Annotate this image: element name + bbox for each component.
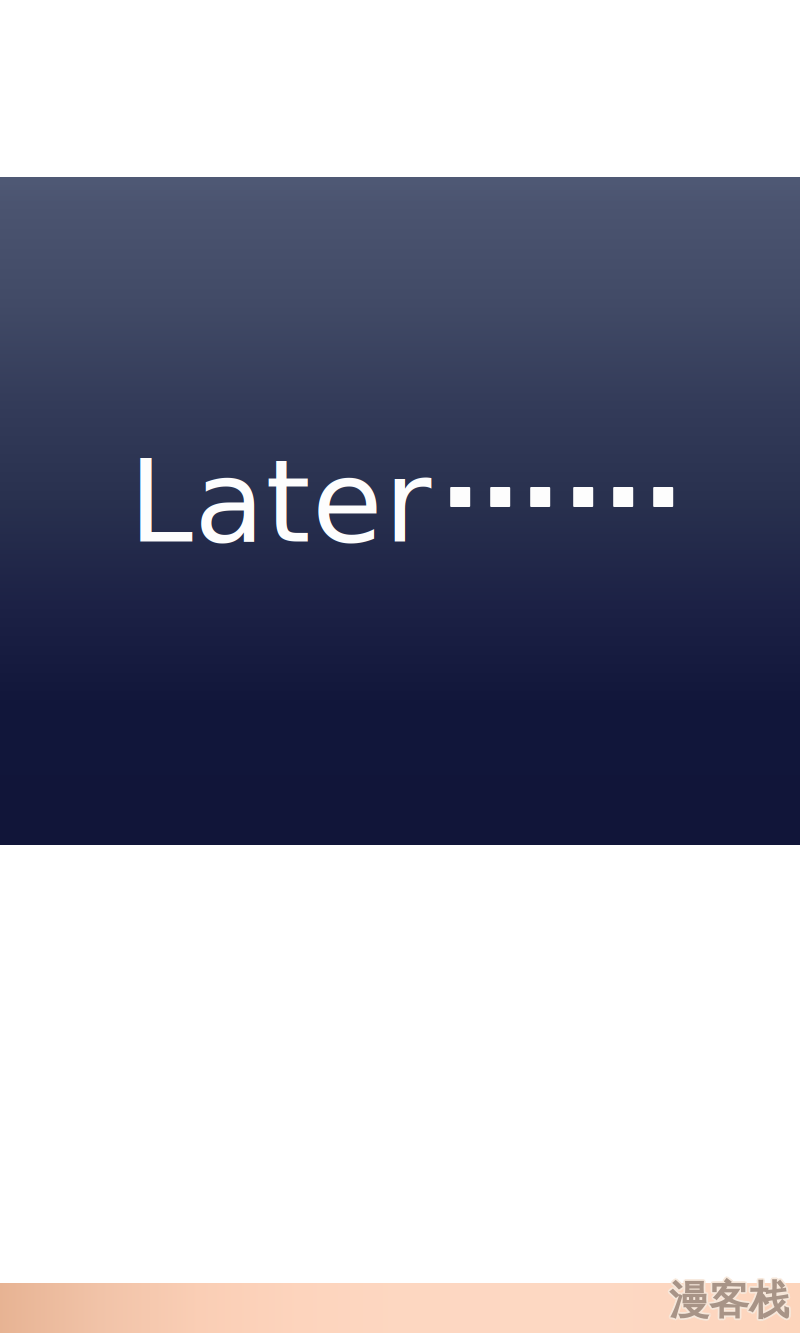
staticText: 漫客栈 <box>669 1274 789 1323</box>
staticText: 漫客栈 <box>667 1276 787 1325</box>
staticText: 漫客栈 <box>670 1277 790 1326</box>
staticText: 漫客栈 <box>670 1275 790 1324</box>
staticText: 漫客栈 <box>669 1276 789 1325</box>
staticText: 漫客栈 <box>669 1278 789 1327</box>
button[interactable]: Comic page, tap to continue <box>0 0 800 1333</box>
staticText: 漫客栈 <box>668 1277 788 1326</box>
staticText: 漫客栈 <box>668 1275 788 1324</box>
staticText: Later <box>129 435 431 568</box>
staticText: 漫客栈 <box>671 1276 791 1325</box>
